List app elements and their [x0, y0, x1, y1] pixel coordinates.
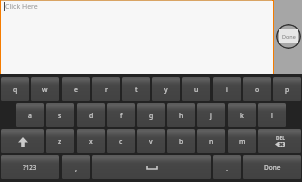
button[interactable]: v — [137, 129, 165, 153]
button[interactable]: f — [107, 103, 135, 127]
button[interactable]: r — [92, 77, 120, 101]
button[interactable]: Done — [243, 155, 301, 179]
staticText: p — [285, 85, 290, 94]
staticText: j — [210, 111, 212, 120]
staticText: o — [255, 85, 260, 94]
button[interactable]: Space — [92, 155, 211, 179]
button[interactable]: m — [228, 129, 256, 153]
staticText: x — [89, 137, 93, 146]
button[interactable]: h — [167, 103, 195, 127]
staticText: DEL — [276, 135, 285, 142]
staticText: h — [179, 111, 184, 120]
button[interactable]: Done — [276, 24, 301, 49]
staticText: m — [239, 137, 246, 146]
button[interactable]: y — [152, 77, 180, 101]
staticText: , — [75, 163, 78, 173]
button[interactable]: c — [107, 129, 135, 153]
staticText: Done — [264, 163, 281, 172]
staticText: Done — [282, 33, 296, 40]
staticText: l — [271, 111, 273, 120]
button[interactable]: k — [228, 103, 256, 127]
button[interactable]: . — [213, 155, 241, 179]
button[interactable]: d — [77, 103, 105, 127]
staticText: . — [226, 163, 229, 173]
staticText: d — [89, 111, 94, 120]
button[interactable]: t — [122, 77, 150, 101]
staticText: u — [194, 85, 199, 94]
staticText: z — [58, 137, 62, 146]
staticText: i — [226, 85, 228, 94]
button[interactable]: j — [197, 103, 225, 127]
button[interactable]: u — [182, 77, 210, 101]
button[interactable]: q — [1, 77, 29, 101]
staticText: s — [58, 111, 62, 120]
staticText: Click Here — [5, 2, 38, 12]
button[interactable]: p — [273, 77, 301, 101]
staticText: b — [179, 137, 184, 146]
staticText: k — [240, 111, 244, 120]
button[interactable]: o — [243, 77, 271, 101]
staticText: e — [74, 85, 78, 94]
staticText: a — [28, 111, 32, 120]
staticText: w — [42, 85, 48, 94]
button[interactable]: g — [137, 103, 165, 127]
staticText: y — [164, 85, 168, 94]
button[interactable]: n — [197, 129, 225, 153]
button[interactable]: b — [167, 129, 195, 153]
button[interactable]: a — [16, 103, 44, 127]
staticText: t — [135, 85, 138, 94]
button[interactable]: Click Here — [1, 1, 273, 74]
staticText: ?123 — [23, 163, 37, 171]
staticText: q — [13, 85, 18, 94]
button[interactable]: s — [46, 103, 74, 127]
button[interactable]: x — [77, 129, 105, 153]
button[interactable]: Delete — [258, 129, 301, 153]
staticText: g — [149, 111, 154, 120]
staticText: n — [209, 137, 214, 146]
button[interactable]: , — [62, 155, 90, 179]
staticText: f — [120, 111, 123, 120]
staticText: c — [119, 137, 123, 146]
staticText: r — [105, 85, 108, 94]
button[interactable]: Shift — [1, 129, 44, 153]
button[interactable]: ?123 — [1, 155, 59, 179]
button[interactable]: z — [46, 129, 74, 153]
button[interactable]: e — [62, 77, 90, 101]
button[interactable]: l — [258, 103, 286, 127]
staticText: v — [149, 137, 153, 146]
button[interactable]: w — [31, 77, 59, 101]
button[interactable]: i — [213, 77, 241, 101]
